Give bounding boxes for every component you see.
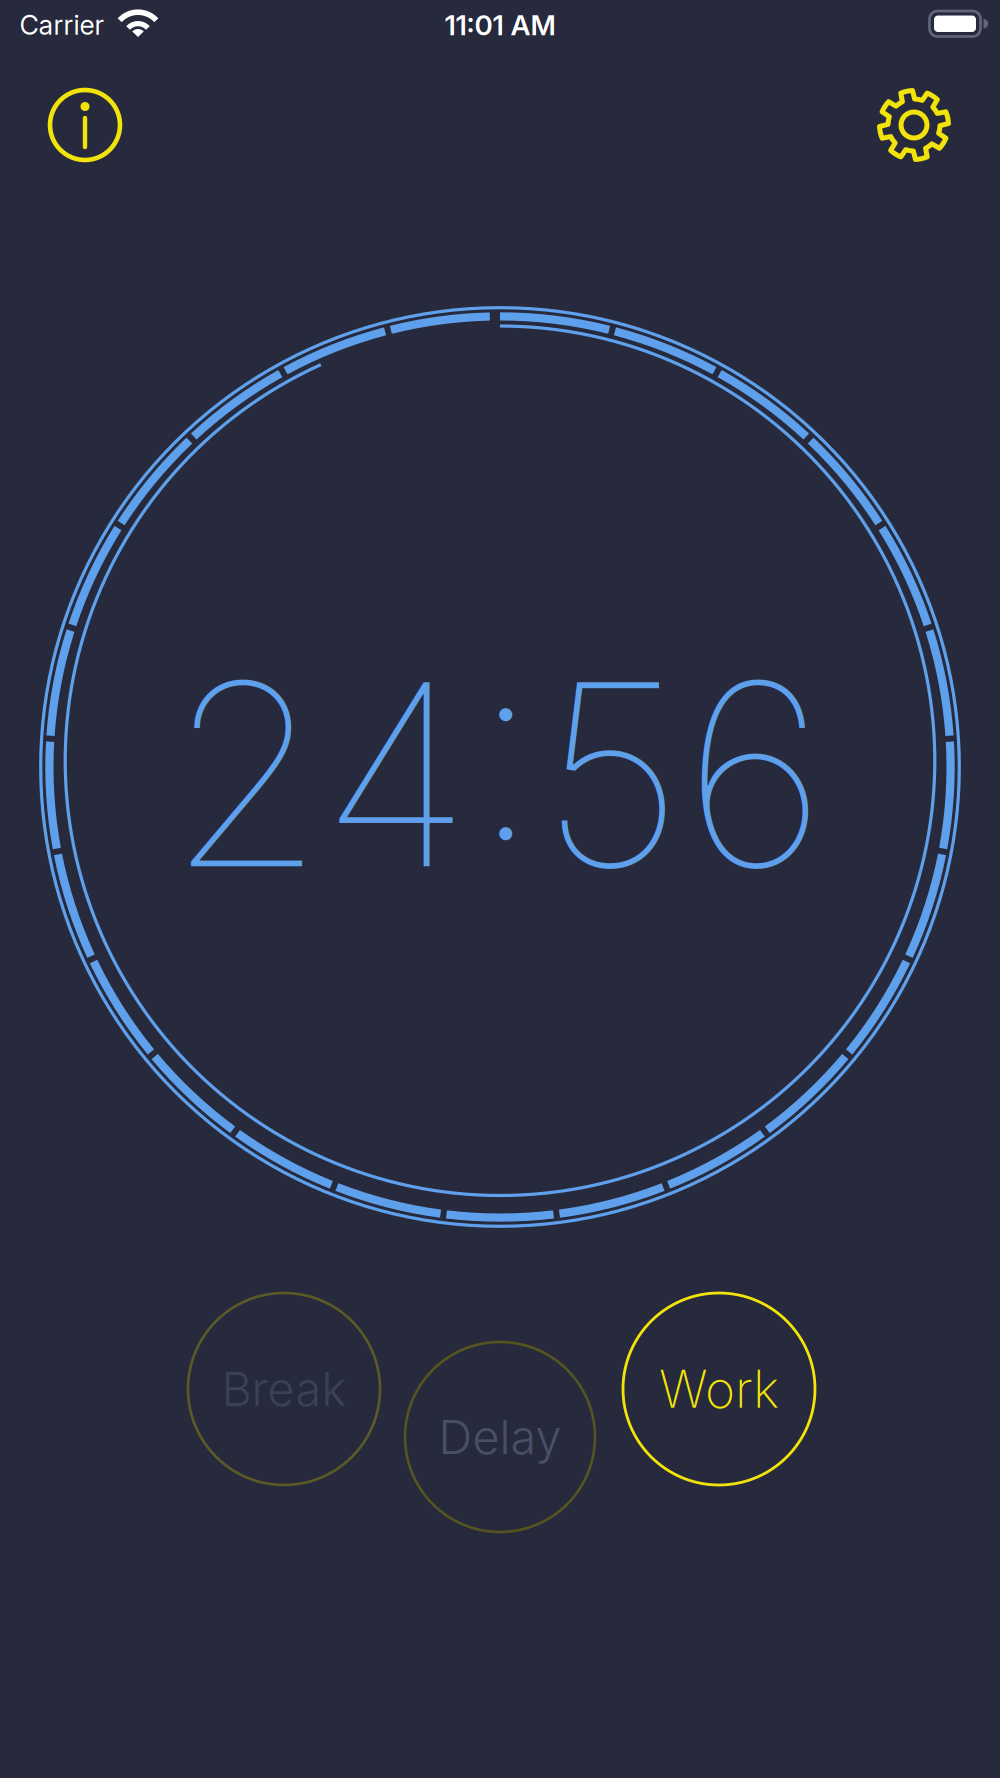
staticText: 24:56 — [167, 621, 826, 927]
staticText: Break — [221, 1361, 346, 1417]
staticText: Work — [659, 1358, 779, 1420]
staticText: Delay — [438, 1409, 561, 1465]
button[interactable]: Settings — [872, 83, 956, 167]
button[interactable]: Break — [184, 1289, 384, 1489]
staticText: Carrier — [19, 9, 104, 41]
staticText: 11:01 AM — [444, 8, 555, 42]
button[interactable]: Delay — [400, 1337, 600, 1537]
button[interactable]: Work — [619, 1289, 819, 1489]
button[interactable]: Info — [45, 85, 125, 165]
